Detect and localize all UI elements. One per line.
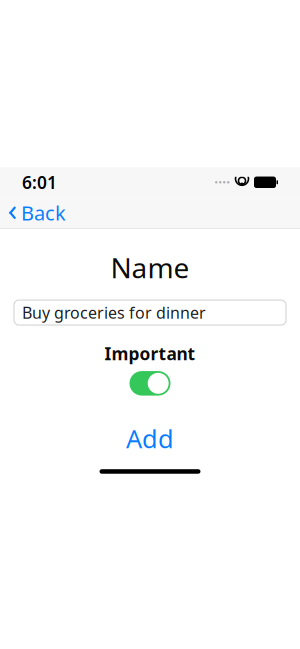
button[interactable]: Important <box>129 371 170 396</box>
button[interactable]: Back <box>0 193 76 232</box>
staticText: Important <box>104 342 195 365</box>
staticText: Name <box>110 249 189 286</box>
button[interactable]: Add <box>110 416 190 461</box>
staticText: Add <box>126 422 174 455</box>
staticText: Buy groceries for dinner <box>22 302 206 323</box>
staticText: Back <box>21 199 66 226</box>
staticText: 6:01 <box>22 171 57 194</box>
